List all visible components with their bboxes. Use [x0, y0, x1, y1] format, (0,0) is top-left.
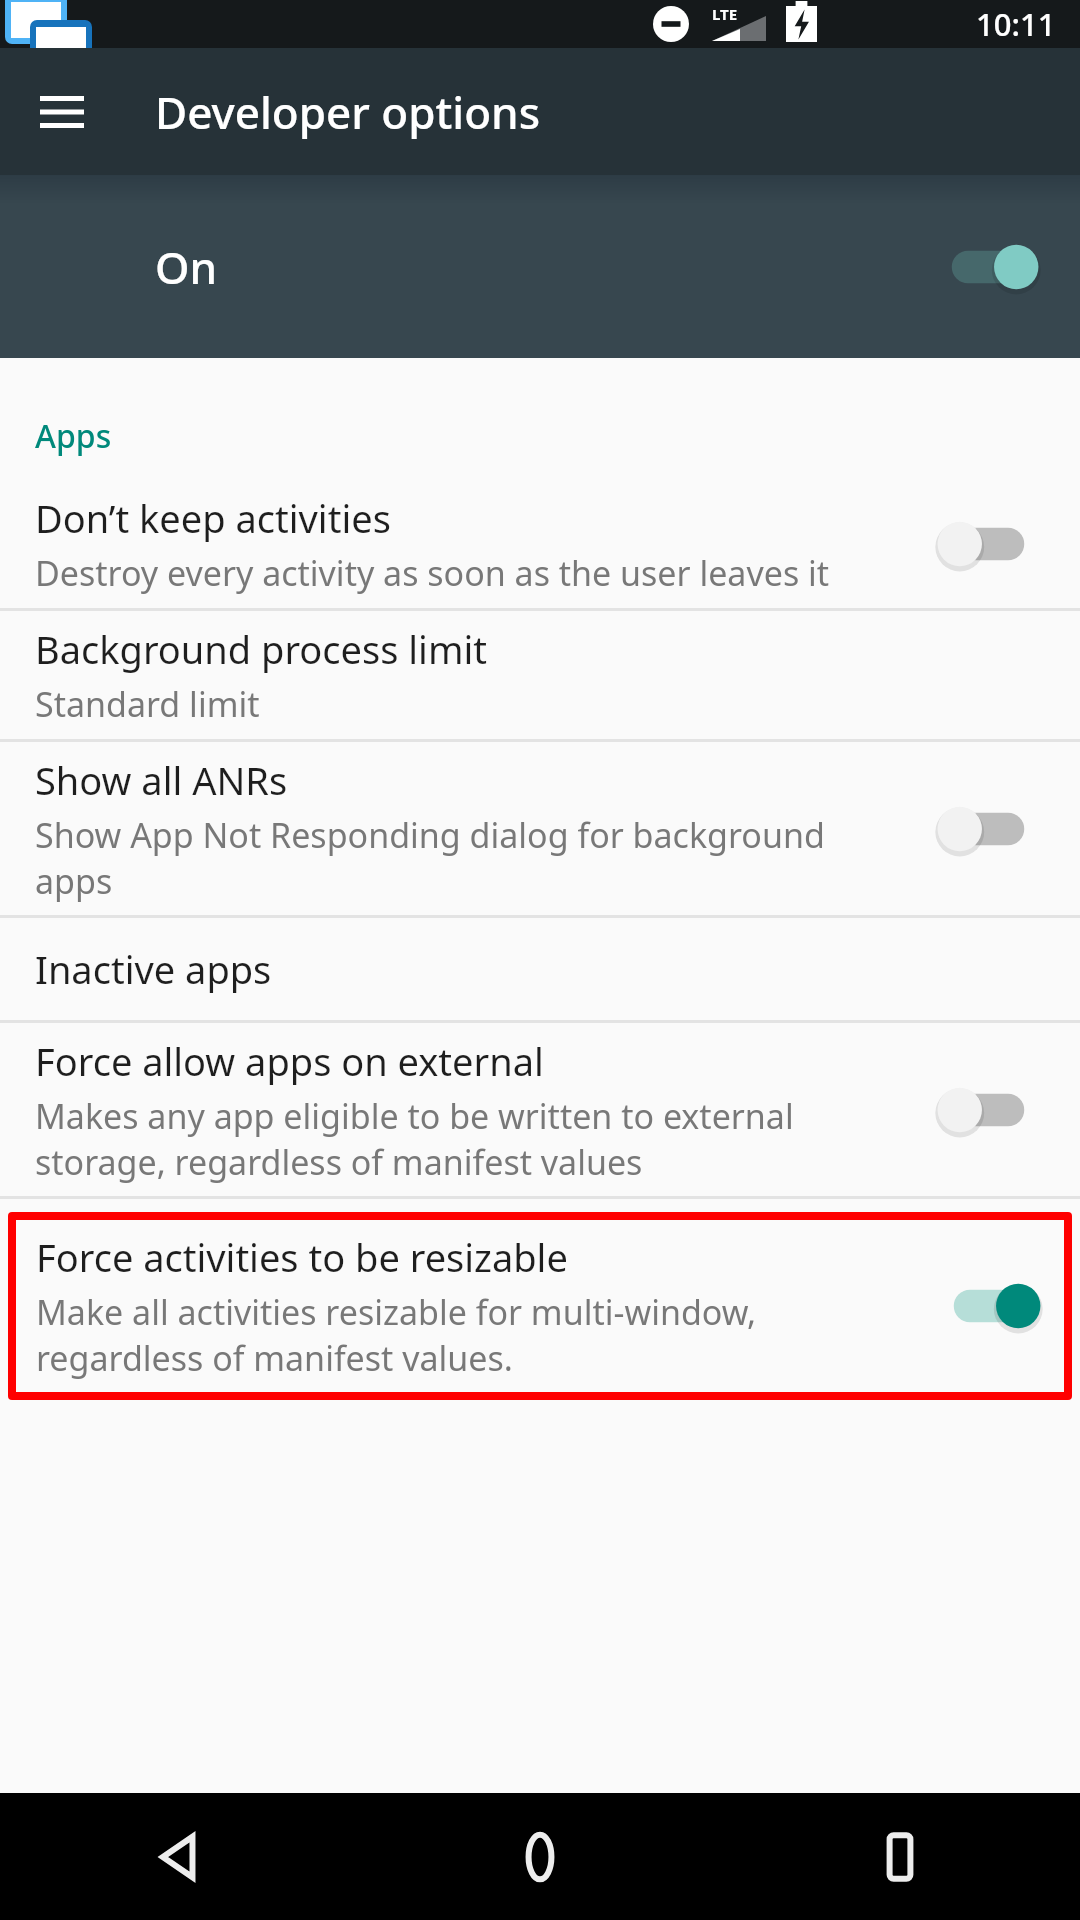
staticText: On — [155, 237, 218, 297]
button[interactable]: Show all ANRs — [0, 742, 1080, 915]
staticText: LTE — [712, 4, 738, 24]
staticText: Makes any app eligible to be written to … — [35, 1093, 888, 1185]
button[interactable]: Setting disabled — [940, 792, 1044, 866]
staticText: Standard limit — [35, 681, 1004, 727]
button[interactable]: Setting disabled — [940, 1073, 1044, 1147]
staticText: Force activities to be resizable — [36, 1231, 568, 1283]
button[interactable]: Force activities to be resizable — [16, 1220, 1064, 1392]
staticText: Destroy every activity as soon as the us… — [35, 550, 888, 596]
button[interactable]: Inactive apps — [0, 918, 1080, 1020]
button[interactable]: Setting enabled — [932, 230, 1036, 304]
button[interactable]: On — [0, 175, 1080, 358]
staticText: Developer options — [155, 82, 541, 142]
button[interactable]: Open navigation drawer — [22, 72, 102, 152]
staticText: Show App Not Responding dialog for backg… — [35, 812, 888, 904]
staticText: Make all activities resizable for multi-… — [36, 1289, 865, 1381]
button[interactable]: Don’t keep activities — [0, 480, 1080, 608]
button[interactable]: Background process limit — [0, 611, 1080, 739]
staticText: Show all ANRs — [35, 754, 288, 806]
staticText: Don’t keep activities — [35, 492, 391, 544]
staticText: Force allow apps on external — [35, 1035, 544, 1087]
button[interactable]: Setting enabled — [934, 1269, 1038, 1343]
staticText: Apps — [35, 414, 112, 458]
button[interactable]: Home — [360, 1793, 720, 1920]
button[interactable]: Back — [0, 1793, 360, 1920]
button[interactable]: Recent apps — [720, 1793, 1080, 1920]
button[interactable]: Force allow apps on external — [0, 1023, 1080, 1196]
staticText: Background process limit — [35, 623, 487, 675]
button[interactable]: Setting disabled — [940, 507, 1044, 581]
staticText: 10:11 — [976, 3, 1056, 45]
staticText: Inactive apps — [35, 943, 272, 995]
